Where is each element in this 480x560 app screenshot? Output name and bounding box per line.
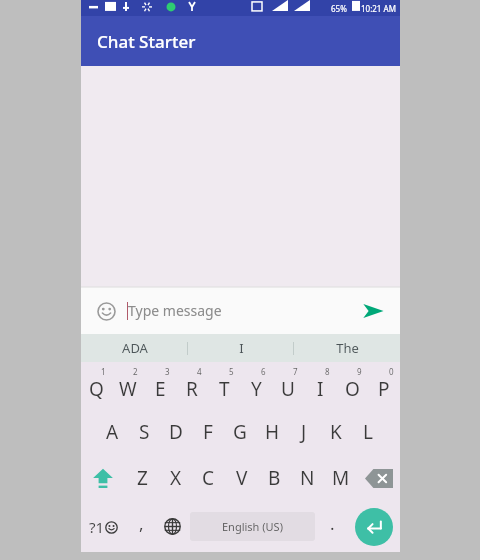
- button[interactable]: Z: [125, 455, 159, 501]
- staticText: I: [239, 339, 244, 357]
- staticText: M: [332, 465, 350, 491]
- button[interactable]: Y: [240, 362, 272, 409]
- staticText: 2: [133, 366, 138, 377]
- staticText: U: [281, 376, 295, 402]
- staticText: C: [202, 465, 215, 491]
- staticText: 0: [389, 366, 394, 377]
- staticText: S: [139, 419, 150, 445]
- button[interactable]: Send message: [356, 294, 390, 328]
- button[interactable]: English (US): [190, 512, 315, 541]
- button[interactable]: U: [272, 362, 304, 409]
- button[interactable]: I: [188, 334, 294, 362]
- staticText: P: [378, 376, 390, 402]
- staticText: 1: [101, 366, 106, 377]
- button[interactable]: E: [144, 362, 176, 409]
- button[interactable]: ADA: [81, 334, 188, 362]
- staticText: N: [300, 465, 315, 491]
- staticText: X: [170, 465, 182, 491]
- button[interactable]: X: [159, 455, 192, 501]
- staticText: 3: [165, 366, 170, 377]
- button[interactable]: W: [112, 362, 144, 409]
- staticText: J: [301, 419, 307, 445]
- button[interactable]: S: [128, 409, 160, 455]
- button[interactable]: Chat Starter: [81, 16, 400, 66]
- button[interactable]: D: [160, 409, 192, 455]
- staticText: G: [233, 419, 247, 445]
- button[interactable]: The: [294, 334, 400, 362]
- staticText: ADA: [122, 339, 148, 357]
- button[interactable]: C: [192, 455, 225, 501]
- button[interactable]: Change keyboard language: [157, 501, 188, 552]
- staticText: English (US): [222, 519, 283, 534]
- button[interactable]: V: [225, 455, 258, 501]
- button[interactable]: L: [352, 409, 384, 455]
- staticText: 7: [293, 366, 298, 377]
- staticText: H: [265, 419, 280, 445]
- staticText: .: [330, 512, 335, 535]
- staticText: W: [119, 376, 137, 402]
- button[interactable]: B: [258, 455, 291, 501]
- staticText: I: [317, 376, 324, 402]
- button[interactable]: K: [320, 409, 352, 455]
- staticText: Q: [89, 376, 104, 402]
- staticText: Type message: [128, 301, 222, 320]
- button[interactable]: Shift: [81, 455, 125, 501]
- button[interactable]: H: [256, 409, 288, 455]
- staticText: ,: [139, 512, 144, 535]
- button[interactable]: T: [208, 362, 240, 409]
- staticText: 65%: [331, 3, 347, 14]
- button[interactable]: R: [176, 362, 208, 409]
- button[interactable]: Backspace: [357, 455, 400, 501]
- staticText: D: [169, 419, 183, 445]
- button[interactable]: I: [304, 362, 336, 409]
- button[interactable]: .: [317, 501, 348, 552]
- button[interactable]: N: [291, 455, 324, 501]
- staticText: 4: [197, 366, 202, 377]
- button[interactable]: Insert emoji: [91, 296, 121, 326]
- staticText: Y: [251, 376, 262, 402]
- staticText: The: [336, 339, 359, 357]
- button[interactable]: M: [324, 455, 357, 501]
- button[interactable]: O: [336, 362, 368, 409]
- staticText: T: [219, 376, 230, 402]
- staticText: ?1: [89, 517, 105, 537]
- staticText: 6: [261, 366, 266, 377]
- button[interactable]: A: [97, 409, 128, 455]
- staticText: Chat Starter: [97, 30, 196, 53]
- button[interactable]: G: [224, 409, 256, 455]
- staticText: 9: [357, 366, 362, 377]
- staticText: F: [203, 419, 213, 445]
- button[interactable]: J: [288, 409, 320, 455]
- staticText: V: [236, 465, 248, 491]
- staticText: B: [268, 465, 281, 491]
- button[interactable]: ,: [126, 501, 157, 552]
- button[interactable]: Enter: [348, 501, 400, 552]
- staticText: 5: [229, 366, 234, 377]
- staticText: A: [106, 419, 119, 445]
- button[interactable]: F: [192, 409, 224, 455]
- staticText: K: [330, 419, 342, 445]
- button[interactable]: ?1: [81, 501, 126, 552]
- staticText: Z: [137, 465, 148, 491]
- staticText: O: [345, 376, 360, 402]
- button[interactable]: P: [368, 362, 400, 409]
- staticText: E: [155, 376, 166, 402]
- button[interactable]: Q: [81, 362, 112, 409]
- staticText: 8: [325, 366, 330, 377]
- staticText: 10:21 AM: [361, 3, 396, 14]
- staticText: R: [186, 376, 198, 402]
- staticText: L: [363, 419, 373, 445]
